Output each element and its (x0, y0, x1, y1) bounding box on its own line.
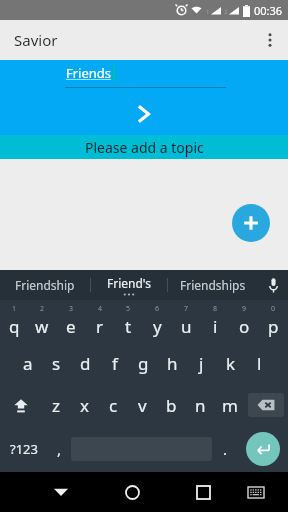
staticText: 9 (242, 304, 247, 314)
button[interactable]: Next (0, 100, 288, 128)
button[interactable]: b (157, 384, 186, 426)
button[interactable]: Backspace (248, 393, 284, 417)
staticText: 6 (155, 304, 160, 314)
staticText: 5 (126, 304, 131, 314)
button[interactable]: f (100, 342, 129, 384)
button[interactable]: Add (232, 204, 270, 242)
button[interactable]: Switch keyboard (233, 472, 279, 512)
staticText: Friendships (180, 277, 246, 293)
button[interactable]: Please add a topic (0, 135, 288, 159)
button[interactable]: Shift (0, 384, 41, 426)
button[interactable]: l (245, 342, 274, 384)
staticText: , (57, 439, 62, 459)
staticText: u (181, 315, 192, 338)
staticText: v (138, 394, 147, 417)
button[interactable]: v (128, 384, 157, 426)
staticText: g (138, 352, 149, 375)
staticText: o (239, 315, 250, 338)
button[interactable]: n (186, 384, 215, 426)
staticText: Friends (66, 64, 112, 82)
staticText: x (80, 394, 89, 417)
staticText: m (222, 394, 238, 417)
button[interactable]: 2 (28, 300, 56, 342)
staticText: Friendship (15, 277, 75, 293)
staticText: f (112, 352, 118, 375)
staticText: 7 (184, 304, 189, 314)
staticText: 2 (40, 304, 45, 314)
button[interactable]: 0 (259, 300, 288, 342)
staticText: t (125, 315, 132, 338)
button[interactable]: Friend's (91, 270, 167, 300)
staticText: i (213, 315, 218, 338)
button[interactable]: Enter (246, 432, 280, 466)
button[interactable]: 3 (56, 300, 85, 342)
staticText: k (226, 352, 236, 375)
staticText: h (167, 352, 178, 375)
staticText: 1 (206, 8, 210, 16)
staticText: d (80, 352, 91, 375)
button[interactable]: , (47, 426, 71, 472)
button[interactable]: z (41, 384, 70, 426)
staticText: b (166, 394, 177, 417)
staticText: c (109, 394, 118, 417)
button[interactable]: j (187, 342, 216, 384)
button[interactable]: a (14, 342, 42, 384)
staticText: p (268, 315, 279, 338)
staticText: e (66, 315, 76, 338)
button[interactable]: k (216, 342, 245, 384)
button[interactable]: 5 (114, 300, 143, 342)
staticText: . (223, 439, 228, 459)
staticText: 00:36 (254, 3, 283, 18)
button[interactable]: More options (252, 20, 288, 60)
button[interactable]: 7 (172, 300, 201, 342)
staticText: Please add a topic (85, 138, 204, 157)
staticText: ?123 (10, 440, 38, 458)
button[interactable]: 4 (85, 300, 114, 342)
staticText: a (23, 352, 33, 375)
button[interactable]: 8 (201, 300, 230, 342)
button[interactable]: Voice input (258, 270, 288, 300)
staticText: n (195, 394, 206, 417)
button[interactable]: x (70, 384, 99, 426)
button[interactable]: h (158, 342, 187, 384)
button[interactable]: g (129, 342, 158, 384)
staticText: 1 (12, 304, 17, 314)
button[interactable]: ?123 (0, 426, 47, 472)
button[interactable]: 9 (230, 300, 259, 342)
staticText: j (199, 352, 204, 375)
button[interactable]: d (71, 342, 100, 384)
staticText: l (257, 352, 262, 375)
staticText: 4 (98, 304, 103, 314)
staticText: q (9, 315, 20, 338)
button[interactable]: Friendship (0, 270, 90, 300)
staticText: Friend's (107, 275, 151, 291)
staticText: y (153, 315, 162, 338)
staticText: w (35, 315, 49, 338)
button[interactable]: s (42, 342, 71, 384)
button[interactable]: 1 (0, 300, 28, 342)
staticText: Savior (14, 30, 58, 50)
staticText: r (96, 315, 104, 338)
staticText: 8 (213, 304, 218, 314)
button[interactable]: 6 (143, 300, 172, 342)
button[interactable]: m (215, 384, 244, 426)
staticText: 0 (271, 304, 276, 314)
staticText: 3 (69, 304, 74, 314)
button[interactable]: Friendships (168, 270, 258, 300)
button[interactable]: Back (38, 472, 84, 512)
button[interactable]: . (212, 426, 238, 472)
staticText: s (52, 352, 61, 375)
staticText: 2 (224, 8, 228, 16)
button[interactable]: c (99, 384, 128, 426)
button[interactable]: Home (109, 472, 155, 512)
button[interactable]: Recent apps (180, 472, 226, 512)
staticText: z (52, 394, 60, 417)
